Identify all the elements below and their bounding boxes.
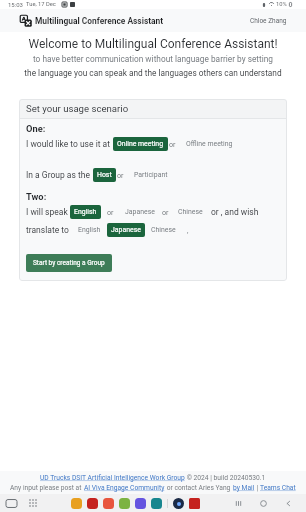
staticText: or <box>162 208 169 216</box>
button[interactable]: Offline meeting <box>182 137 237 151</box>
button[interactable]: Recent apps <box>6 498 17 509</box>
staticText: | <box>255 484 260 492</box>
staticText: , <box>187 226 189 234</box>
staticText: Participant <box>134 171 168 179</box>
staticText: Chinese <box>178 208 203 216</box>
button[interactable]: Japanese <box>121 205 159 219</box>
button[interactable]: English <box>70 205 101 219</box>
staticText: Set your usage scenario <box>26 103 129 114</box>
button[interactable]: Chloe Zhang <box>250 17 287 25</box>
button[interactable]: UD Trucks DSIT Artificial Intelligence W… <box>40 474 185 482</box>
button[interactable]: Chinese <box>147 223 180 237</box>
staticText: the language you can speak and the langu… <box>0 68 306 78</box>
button[interactable]: Chinese <box>174 205 207 219</box>
staticText: Tue, 17 Dec <box>26 1 56 8</box>
staticText: 15:03 <box>8 1 23 8</box>
staticText: to have better communication without lan… <box>0 54 306 64</box>
staticText: English <box>74 208 97 216</box>
staticText: Multilingual Conference Assistant <box>35 16 164 26</box>
staticText: or <box>117 171 124 179</box>
button[interactable]: App 2 <box>87 498 98 509</box>
button[interactable]: App 1 <box>71 498 82 509</box>
button[interactable]: Recents <box>233 498 244 509</box>
button[interactable]: App 4 <box>119 498 130 509</box>
staticText: Welcome to Multilingual Conference Assis… <box>0 37 306 51</box>
button[interactable]: Online meeting <box>113 137 168 151</box>
button[interactable]: Back <box>283 498 294 509</box>
staticText: or , and wish <box>211 207 259 217</box>
staticText: Chinese <box>151 226 176 234</box>
button[interactable]: App 6 <box>151 498 162 509</box>
button[interactable]: English <box>74 223 105 237</box>
staticText: Two: <box>26 191 47 202</box>
button[interactable]: All apps <box>28 498 38 508</box>
button[interactable]: Start by creating a Group <box>26 254 112 272</box>
staticText: or <box>107 208 114 216</box>
staticText: English <box>78 226 101 234</box>
staticText: translate to <box>26 225 69 235</box>
button[interactable]: App 5 <box>135 498 146 509</box>
button[interactable]: by Mail <box>233 484 255 492</box>
staticText: or <box>169 140 176 148</box>
other: App logo <box>20 15 32 27</box>
staticText: Japanese <box>125 208 155 216</box>
button[interactable]: AI Viva Engage Community <box>84 484 165 492</box>
staticText: Any input please post at <box>10 484 84 492</box>
staticText: 10% <box>276 1 287 8</box>
staticText: I would like to use it at <box>26 139 110 149</box>
staticText: One: <box>26 123 46 134</box>
button[interactable]: App 8 <box>189 498 200 509</box>
button[interactable]: Participant <box>130 168 172 182</box>
staticText: I will speak <box>26 207 68 217</box>
button[interactable]: Host <box>93 168 116 182</box>
button[interactable]: Teams Chat <box>260 484 296 492</box>
staticText: or contact Aries Yang <box>165 484 233 492</box>
staticText: In a Group as the <box>26 170 90 180</box>
button[interactable]: App 3 <box>103 498 114 509</box>
button[interactable]: Japanese <box>107 223 145 237</box>
button[interactable]: Home <box>258 498 269 509</box>
staticText: Offline meeting <box>186 140 233 148</box>
staticText: Host <box>97 171 112 179</box>
staticText: Japanese <box>111 226 141 234</box>
staticText: Start by creating a Group <box>33 259 105 267</box>
staticText: © 2024 | build 20240530.1 <box>185 474 266 482</box>
button[interactable]: App 7 <box>173 498 184 509</box>
staticText: Online meeting <box>117 140 164 148</box>
